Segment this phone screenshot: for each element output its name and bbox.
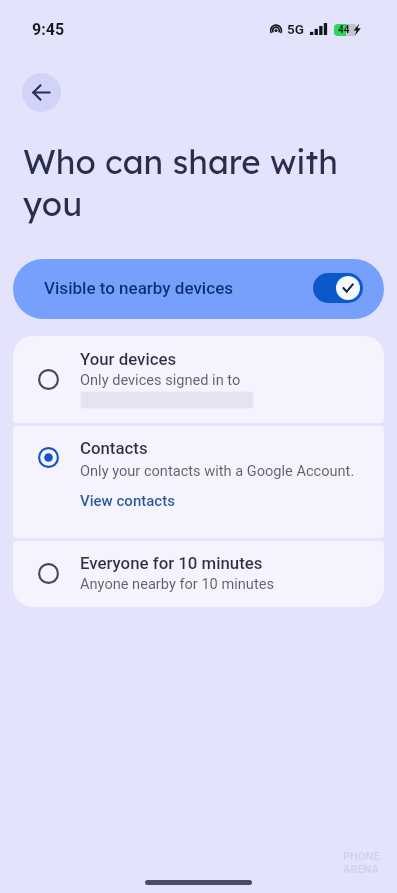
- staticText: 5G: [287, 21, 304, 37]
- staticText: Everyone for 10 minutes: [80, 553, 263, 573]
- button[interactable]: Contacts: [13, 426, 384, 538]
- staticText: Anyone nearby for 10 minutes: [80, 575, 274, 592]
- staticText: 9:45: [32, 20, 65, 39]
- button[interactable]: Visible to nearby devices: [13, 259, 384, 319]
- staticText: Your devices: [80, 349, 177, 369]
- staticText: 44: [338, 24, 350, 36]
- button[interactable]: Your devices: [13, 336, 384, 423]
- staticText: Only devices signed in to: [80, 371, 241, 388]
- button[interactable]: Back: [22, 73, 61, 112]
- staticText: Contacts: [80, 438, 148, 458]
- staticText: Visible to nearby devices: [44, 278, 234, 298]
- staticText: PHONE: [343, 850, 380, 863]
- staticText: Only your contacts with a Google Account…: [80, 462, 355, 479]
- staticText: Who can share with you: [23, 141, 353, 224]
- button[interactable]: Everyone for 10 minutes: [13, 541, 384, 607]
- button[interactable]: View contacts: [80, 492, 175, 510]
- staticText: ARENA: [343, 863, 379, 876]
